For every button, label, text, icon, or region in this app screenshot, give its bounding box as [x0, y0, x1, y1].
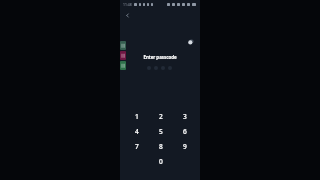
staticText: 8 [159, 142, 163, 151]
button[interactable]: Back [121, 9, 133, 21]
button[interactable]: 4 [125, 124, 149, 139]
button[interactable]: App shortcut [120, 41, 126, 50]
staticText: 2 [159, 112, 163, 121]
button[interactable]: Toggle visibility [184, 36, 196, 48]
button[interactable]: 9 [173, 139, 197, 154]
button[interactable]: 1 [125, 109, 149, 124]
staticText: 4 [135, 127, 139, 136]
staticText: 1 [135, 112, 139, 121]
staticText: Enter passcode [143, 54, 177, 60]
staticText: 9 [183, 142, 187, 151]
button[interactable]: 5 [149, 124, 173, 139]
button[interactable]: 8 [149, 139, 173, 154]
button[interactable]: App shortcut [120, 51, 126, 60]
button[interactable]: 3 [173, 109, 197, 124]
staticText: 7 [135, 142, 139, 151]
staticText: 0 [159, 157, 163, 166]
button[interactable]: 6 [173, 124, 197, 139]
staticText: 3 [183, 112, 187, 121]
staticText: 6 [183, 127, 187, 136]
staticText: 5 [159, 127, 163, 136]
button[interactable]: 0 [149, 154, 173, 169]
staticText: 11:48 [123, 2, 132, 7]
button[interactable]: App shortcut [120, 61, 126, 70]
button[interactable]: 2 [149, 109, 173, 124]
button[interactable]: 7 [125, 139, 149, 154]
